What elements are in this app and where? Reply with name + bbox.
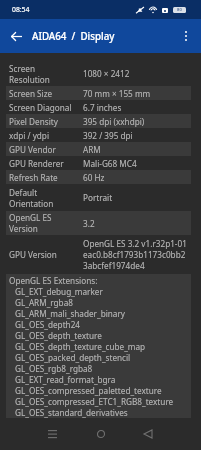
- button[interactable]: Back: [4, 24, 28, 48]
- staticText: GL_OES_compressed_paletted_texture: [15, 385, 162, 396]
- button[interactable]: GPU Vendor: [0, 142, 201, 156]
- staticText: OpenGL ES Extensions:: [9, 275, 98, 286]
- staticText: GL_ARM_mali_shader_binary: [15, 308, 125, 319]
- staticText: Resolution: [9, 74, 50, 85]
- staticText: GL_OES_depth_texture: [15, 330, 102, 341]
- staticText: 70 mm × 155 mm: [83, 88, 151, 99]
- staticText: Portrait: [83, 192, 113, 203]
- staticText: Pixel Density: [9, 116, 58, 127]
- button[interactable]: GPU Version: [0, 235, 201, 274]
- button[interactable]: Refresh Rate: [0, 170, 201, 184]
- staticText: GL_OES_compressed_ETC1_RGB8_texture: [15, 396, 174, 407]
- staticText: 3.2: [83, 218, 95, 229]
- staticText: GL_OES_depth_texture_cube_map: [15, 341, 146, 352]
- button[interactable]: Recent apps: [37, 419, 67, 449]
- staticText: GL_OES_standard_derivatives: [15, 407, 128, 418]
- staticText: Screen Size: [9, 88, 53, 99]
- button[interactable]: Screen Size: [0, 86, 201, 100]
- staticText: 1080 × 2412: [83, 68, 130, 79]
- button[interactable]: More options: [174, 24, 198, 48]
- staticText: GL_OES_packed_depth_stencil: [15, 352, 131, 363]
- staticText: Version: [9, 223, 38, 234]
- staticText: GL_EXT_read_format_bgra: [15, 374, 116, 385]
- button[interactable]: Screen Diagonal: [0, 100, 201, 114]
- staticText: 3abcfef1974de4: [83, 260, 145, 271]
- button[interactable]: OpenGL ES Extensions:: [0, 274, 201, 418]
- staticText: GL_OES_depth24: [15, 319, 81, 330]
- staticText: 6.7 inches: [83, 102, 122, 113]
- button[interactable]: OpenGL ES: [0, 211, 201, 235]
- staticText: 395 dpi (xxhdpi): [83, 116, 145, 127]
- button[interactable]: GPU Renderer: [0, 156, 201, 170]
- staticText: OpenGL ES: [9, 212, 52, 223]
- staticText: 80: [177, 7, 182, 13]
- staticText: 08:54: [12, 5, 30, 14]
- staticText: eac0.b8cf1793b1173c0bb2: [83, 249, 186, 260]
- staticText: AIDA64 / Display: [32, 30, 115, 43]
- button[interactable]: Default: [0, 184, 201, 211]
- staticText: Refresh Rate: [9, 172, 58, 183]
- staticText: GPU Renderer: [9, 158, 64, 169]
- button[interactable]: Home: [86, 419, 116, 449]
- staticText: OpenGL ES 3.2 v1.r32p1-01: [83, 238, 187, 249]
- button[interactable]: Screen: [0, 61, 201, 86]
- staticText: 60 Hz: [83, 172, 105, 183]
- staticText: GPU Vendor: [9, 144, 56, 155]
- staticText: xdpi / ydpi: [9, 130, 50, 141]
- staticText: Mali-G68 MC4: [83, 158, 137, 169]
- staticText: GL_EXT_debug_marker: [15, 286, 103, 297]
- button[interactable]: xdpi / ydpi: [0, 128, 201, 142]
- staticText: Orientation: [9, 198, 54, 209]
- button[interactable]: Back: [133, 419, 163, 449]
- button[interactable]: Pixel Density: [0, 114, 201, 128]
- staticText: Default: [9, 187, 38, 198]
- staticText: Screen: [9, 63, 35, 74]
- staticText: GL_OES_rgb8_rgba8: [15, 363, 93, 374]
- staticText: ARM: [83, 144, 101, 155]
- staticText: GL_ARM_rgba8: [15, 297, 73, 308]
- staticText: Screen Diagonal: [9, 102, 72, 113]
- staticText: 392 / 395 dpi: [83, 130, 133, 141]
- staticText: GPU Version: [9, 249, 57, 260]
